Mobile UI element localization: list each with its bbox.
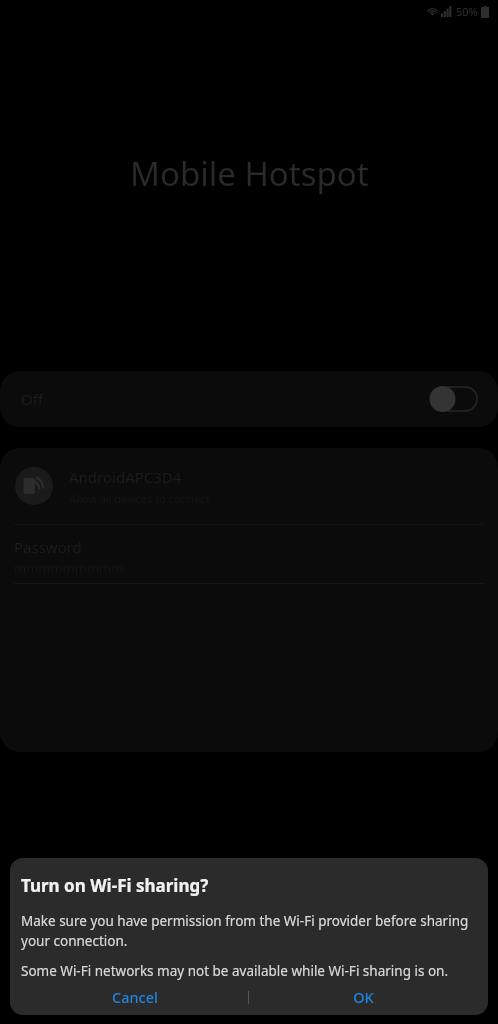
staticText: Cancel bbox=[112, 987, 158, 1007]
staticText: AndroidAPC3D4 bbox=[69, 467, 182, 487]
staticText: Make sure you have permission from the W… bbox=[21, 912, 477, 950]
button[interactable]: Mobile Hotspot toggle, off bbox=[429, 386, 477, 412]
staticText: Mobile Hotspot bbox=[130, 151, 369, 196]
button[interactable]: Cancel bbox=[21, 980, 248, 1014]
button[interactable]: AndroidAPC3D4 bbox=[0, 448, 498, 524]
staticText: Password bbox=[14, 537, 82, 557]
staticText: OK bbox=[353, 987, 374, 1007]
staticText: Some Wi-Fi networks may not be available… bbox=[21, 962, 449, 980]
button[interactable]: Off bbox=[0, 371, 498, 427]
button[interactable]: OK bbox=[249, 980, 477, 1014]
staticText: Turn on Wi-Fi sharing? bbox=[21, 874, 209, 897]
staticText: Off bbox=[21, 389, 44, 409]
staticText: 50% bbox=[456, 4, 478, 19]
